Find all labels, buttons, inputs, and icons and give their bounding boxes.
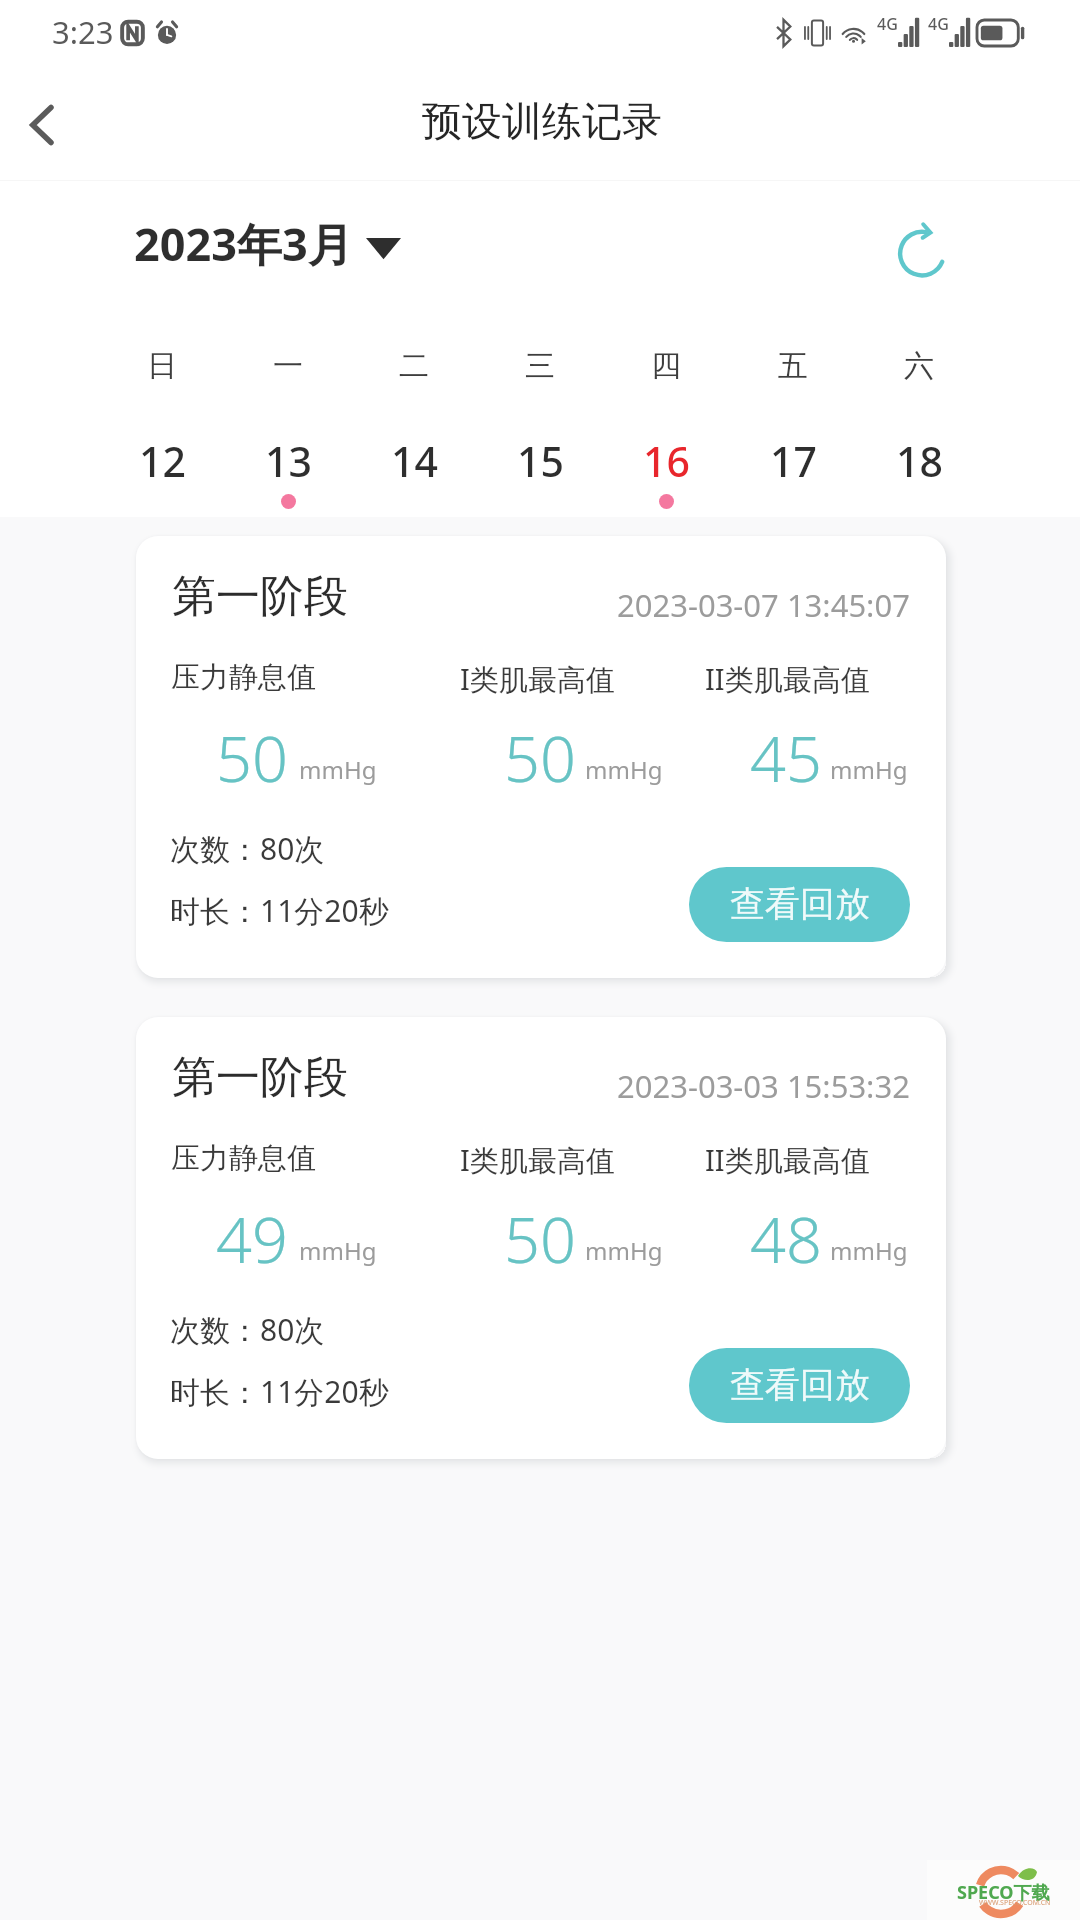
staticText: II类肌最高值 bbox=[705, 659, 870, 699]
button[interactable]: Refresh bbox=[887, 217, 957, 287]
staticText: mmHg bbox=[830, 1234, 908, 1267]
button[interactable]: Back bbox=[0, 72, 112, 180]
staticText: 13 bbox=[265, 433, 312, 489]
staticText: 日 bbox=[147, 347, 177, 385]
staticText: mmHg bbox=[585, 753, 663, 786]
staticText: 时长：11分20秒 bbox=[170, 1371, 389, 1412]
button[interactable]: 第一阶段 bbox=[136, 536, 946, 978]
staticText: 第一阶段 bbox=[172, 569, 348, 624]
button[interactable]: 14 bbox=[351, 430, 477, 518]
button[interactable]: 查看回放 bbox=[689, 1348, 910, 1423]
staticText: 四 bbox=[651, 347, 681, 385]
staticText: 50 bbox=[216, 715, 288, 801]
staticText: 45 bbox=[750, 715, 822, 801]
staticText: mmHg bbox=[830, 753, 908, 786]
staticText: mmHg bbox=[299, 753, 377, 786]
staticText: 二 bbox=[399, 347, 429, 385]
staticText: 时长：11分20秒 bbox=[170, 890, 389, 931]
staticText: 查看回放 bbox=[730, 882, 870, 926]
staticText: I类肌最高值 bbox=[460, 1140, 615, 1180]
staticText: 预设训练记录 bbox=[422, 96, 662, 146]
staticText: 49 bbox=[216, 1196, 288, 1282]
staticText: 2023-03-03 15:53:32 bbox=[617, 1065, 910, 1107]
staticText: 17 bbox=[770, 433, 817, 489]
staticText: 18 bbox=[896, 433, 943, 489]
staticText: 六 bbox=[904, 347, 934, 385]
staticText: 2023-03-07 13:45:07 bbox=[617, 584, 910, 626]
button[interactable]: 2023年3月 bbox=[134, 213, 401, 274]
staticText: 48 bbox=[750, 1196, 822, 1282]
staticText: I类肌最高值 bbox=[460, 659, 615, 699]
staticText: 五 bbox=[778, 347, 808, 385]
staticText: 4G bbox=[877, 13, 898, 35]
button[interactable]: 12 bbox=[99, 430, 225, 518]
staticText: 压力静息值 bbox=[171, 1140, 316, 1177]
staticText: mmHg bbox=[585, 1234, 663, 1267]
staticText: WWW.SPECO.COM.CN bbox=[979, 1898, 1051, 1908]
button[interactable]: 16 bbox=[603, 430, 729, 518]
staticText: 4G bbox=[928, 13, 949, 35]
button[interactable]: 13 bbox=[225, 430, 351, 518]
staticText: 一 bbox=[273, 347, 303, 385]
button[interactable]: 17 bbox=[730, 430, 856, 518]
staticText: 第一阶段 bbox=[172, 1050, 348, 1105]
staticText: 12 bbox=[139, 433, 186, 489]
staticText: 三 bbox=[525, 347, 555, 385]
staticText: 16 bbox=[643, 433, 690, 489]
staticText: 压力静息值 bbox=[171, 659, 316, 696]
staticText: 次数：80次 bbox=[170, 828, 325, 869]
button[interactable]: 第一阶段 bbox=[136, 1017, 946, 1459]
staticText: 2023年3月 bbox=[134, 213, 353, 274]
button[interactable]: 15 bbox=[477, 430, 603, 518]
button[interactable]: 18 bbox=[856, 430, 982, 518]
button[interactable]: 查看回放 bbox=[689, 867, 910, 942]
staticText: 15 bbox=[517, 433, 564, 489]
staticText: 14 bbox=[391, 433, 438, 489]
staticText: 3:23 bbox=[52, 11, 114, 53]
staticText: II类肌最高值 bbox=[705, 1140, 870, 1180]
staticText: 50 bbox=[504, 715, 576, 801]
staticText: 查看回放 bbox=[730, 1363, 870, 1407]
staticText: SPECO下载 bbox=[957, 1880, 1050, 1905]
staticText: 50 bbox=[504, 1196, 576, 1282]
staticText: 次数：80次 bbox=[170, 1309, 325, 1350]
staticText: mmHg bbox=[299, 1234, 377, 1267]
